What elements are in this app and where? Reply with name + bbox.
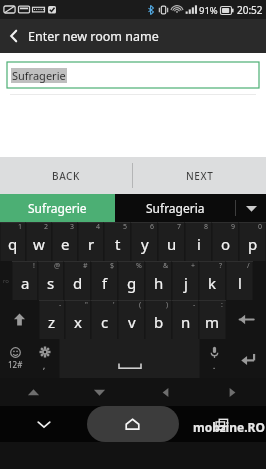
button[interactable]: 4 [78,222,104,261]
staticText: 6 [150,222,155,232]
button[interactable]: Sufragerie [0,194,115,222]
button[interactable]: 6 [131,222,158,261]
button[interactable]: # [64,261,91,300]
staticText: ? [219,261,223,271]
button[interactable]: ! [12,261,38,300]
button[interactable]: Voice input [200,339,229,378]
staticText: mobzine.RO [193,419,265,435]
button[interactable]: Right [199,378,266,406]
button[interactable]: BACK [0,157,132,194]
button[interactable]: Sufragerie [7,62,259,88]
button[interactable]: Left [132,378,199,406]
staticText: 91% [199,4,218,17]
staticText: 9 [231,222,236,232]
staticText: c [101,312,109,332]
staticText: ! [33,261,35,271]
staticText: a [21,273,30,293]
staticText: % [136,261,142,271]
staticText: d [73,273,83,293]
staticText: & [163,261,169,271]
staticText: + [191,261,196,271]
staticText: q [8,234,18,254]
staticText: 1 [18,222,23,232]
button[interactable]: ) [145,300,172,339]
staticText: j [184,273,188,293]
button[interactable]: % [118,261,145,300]
button[interactable]: Home [88,406,177,442]
staticText: 2 [44,222,49,232]
button[interactable]: Language [0,261,12,300]
button[interactable]: Down [66,378,132,406]
staticText: ) [166,300,169,310]
staticText: NEXT [186,169,214,183]
button[interactable]: / [226,261,253,300]
staticText: - [59,300,62,310]
staticText: Enter new room name [28,28,159,45]
staticText: g [127,273,137,293]
staticText: z [48,312,56,332]
button[interactable]: 1 [0,222,26,261]
button[interactable]: : [199,300,226,339]
button[interactable]: Symbols [0,339,30,378]
staticText: 7 [177,222,182,232]
staticText: w [33,234,45,254]
staticText: : [221,300,223,310]
button[interactable]: ? [199,261,226,300]
staticText: , [43,360,46,371]
button[interactable]: ( [118,300,145,339]
button[interactable]: " [65,300,91,339]
staticText: 3 [70,222,75,232]
button[interactable]: Shift [0,300,39,339]
button[interactable]: Recent apps [177,406,266,442]
button[interactable]: 9 [212,222,239,261]
button[interactable]: @ [38,261,64,300]
staticText: Sufrageria [146,200,205,216]
button[interactable]: Sufrageria [115,194,235,222]
button[interactable]: 0 [239,222,266,261]
staticText: u [167,234,177,254]
button[interactable]: & [145,261,172,300]
button[interactable]: Enter [229,339,266,378]
staticText: r [88,234,95,254]
button[interactable]: 2 [26,222,52,261]
staticText: Sufragerie [28,200,87,216]
button[interactable]: Backspace [226,300,266,339]
button[interactable]: Back [0,19,28,53]
staticText: e [61,234,70,254]
button[interactable]: - [172,300,199,339]
staticText: 20:52 [237,3,263,17]
staticText: 0 [258,222,263,232]
button[interactable]: - [39,300,65,339]
button[interactable]: Settings [30,339,59,378]
button[interactable]: Space [59,339,200,378]
button[interactable]: ' [91,300,118,339]
staticText: # [83,261,88,271]
staticText: k [208,273,217,293]
staticText: p [248,234,258,254]
staticText: ro [3,277,9,285]
button[interactable]: 5 [104,222,131,261]
staticText: t [115,234,121,254]
staticText: " [85,300,88,310]
button[interactable]: 7 [158,222,185,261]
staticText: - [193,300,196,310]
staticText: ' [113,300,115,310]
button[interactable]: Hide keyboard [0,406,88,442]
staticText: f [102,273,108,293]
button[interactable]: + [172,261,199,300]
button[interactable]: Up [0,378,66,406]
staticText: s [47,273,55,293]
button[interactable]: NEXT [133,157,266,194]
staticText: x [74,312,82,332]
staticText: y [141,234,149,254]
button[interactable]: 3 [52,222,78,261]
button[interactable]: $ [91,261,118,300]
staticText: $ [110,261,115,271]
staticText: i [197,234,201,254]
staticText: h [154,273,164,293]
staticText: 12# [8,359,23,370]
button[interactable]: More suggestions [236,194,266,222]
staticText: 4 [96,222,101,232]
button[interactable]: 8 [185,222,212,261]
